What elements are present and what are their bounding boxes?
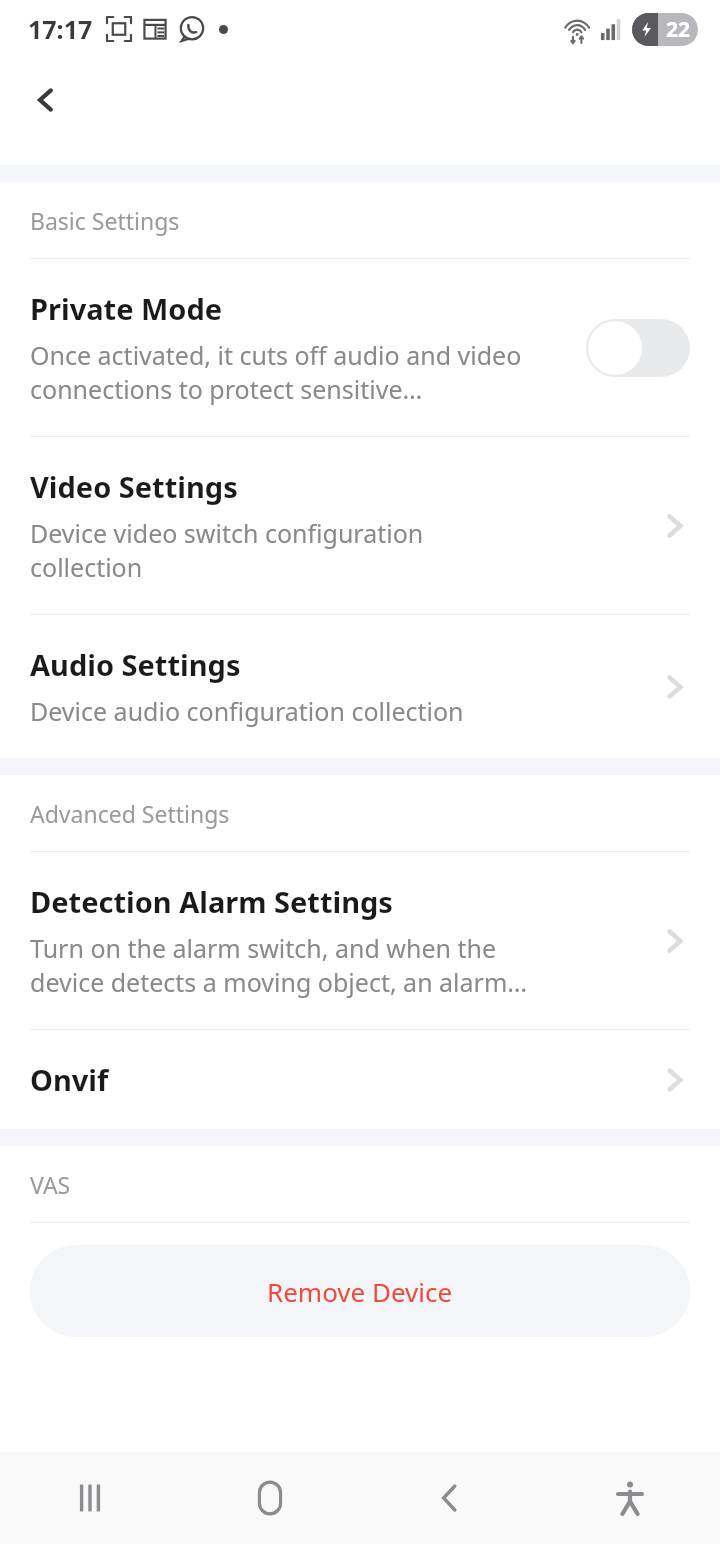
staticText: Once activated, it cuts off audio and vi… (30, 338, 522, 406)
staticText: Audio Settings (30, 645, 241, 684)
staticText: VAS (30, 1169, 71, 1200)
staticText: 22 (666, 15, 691, 44)
staticText: Device video switch configuration collec… (30, 516, 424, 584)
button[interactable]: Onvif (0, 1030, 720, 1129)
button[interactable]: Audio Settings (0, 615, 720, 758)
button[interactable]: Remove Device (30, 1245, 690, 1337)
button[interactable]: Accessibility (540, 1452, 720, 1544)
button[interactable]: Back (360, 1452, 540, 1544)
button[interactable]: Recent apps (0, 1452, 180, 1544)
staticText: Turn on the alarm switch, and when the d… (30, 931, 528, 999)
staticText: Onvif (30, 1060, 109, 1099)
button[interactable]: Private Mode (0, 259, 720, 436)
staticText: Video Settings (30, 467, 238, 506)
button[interactable]: Back (14, 68, 78, 132)
button[interactable]: Detection Alarm Settings (0, 852, 720, 1029)
button[interactable]: Home (180, 1452, 360, 1544)
staticText: Private Mode (30, 289, 223, 328)
staticText: Device audio configuration collection (30, 694, 464, 728)
button[interactable]: Video Settings (0, 437, 720, 614)
staticText: 17:17 (28, 12, 93, 46)
staticText: Advanced Settings (30, 798, 230, 829)
staticText: Detection Alarm Settings (30, 882, 393, 921)
staticText: Basic Settings (30, 205, 180, 236)
staticText: Remove Device (267, 1274, 453, 1309)
button[interactable]: Private Mode toggle (586, 319, 690, 377)
